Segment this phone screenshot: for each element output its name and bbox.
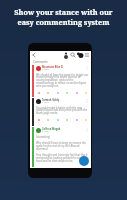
button[interactable]: React [74, 90, 79, 95]
staticText: We should all have the power to toggle o… [36, 73, 89, 88]
button[interactable]: Comment options [85, 66, 89, 70]
button[interactable]: React [74, 117, 79, 122]
staticText: Interesting! Why should I have to keep m… [36, 135, 89, 162]
staticText: Mountain Bike D. [42, 65, 64, 68]
staticText: 2 hours [42, 68, 50, 71]
button[interactable]: Comment options [85, 99, 89, 103]
staticText: Callista Wagab [42, 127, 61, 130]
staticText: You could make it better with the new ta… [36, 106, 89, 115]
button[interactable]: React [45, 117, 50, 122]
staticText: Tarmoh Goldy [42, 98, 60, 101]
button[interactable]: Search [70, 52, 76, 58]
button[interactable]: React [55, 90, 60, 95]
button[interactable]: React [45, 90, 50, 95]
button[interactable]: React [55, 117, 60, 122]
button[interactable]: Profile [63, 52, 69, 58]
button[interactable]: React [83, 90, 88, 95]
button[interactable]: React [64, 90, 69, 95]
button[interactable]: More options [84, 52, 90, 58]
staticText: Show your stance with our easy commentin… [0, 7, 127, 27]
button[interactable]: React [36, 117, 41, 122]
button[interactable]: React [36, 90, 41, 95]
button[interactable]: Back [31, 52, 37, 58]
button[interactable]: React [64, 117, 69, 122]
button[interactable]: React [83, 117, 88, 122]
staticText: 6 hours [42, 130, 50, 133]
staticText: Comments [33, 60, 48, 64]
staticText: 3 hours [42, 101, 50, 104]
button[interactable]: People [77, 52, 83, 58]
button[interactable]: Comment options [85, 128, 89, 132]
button[interactable]: Add comment [79, 156, 89, 166]
